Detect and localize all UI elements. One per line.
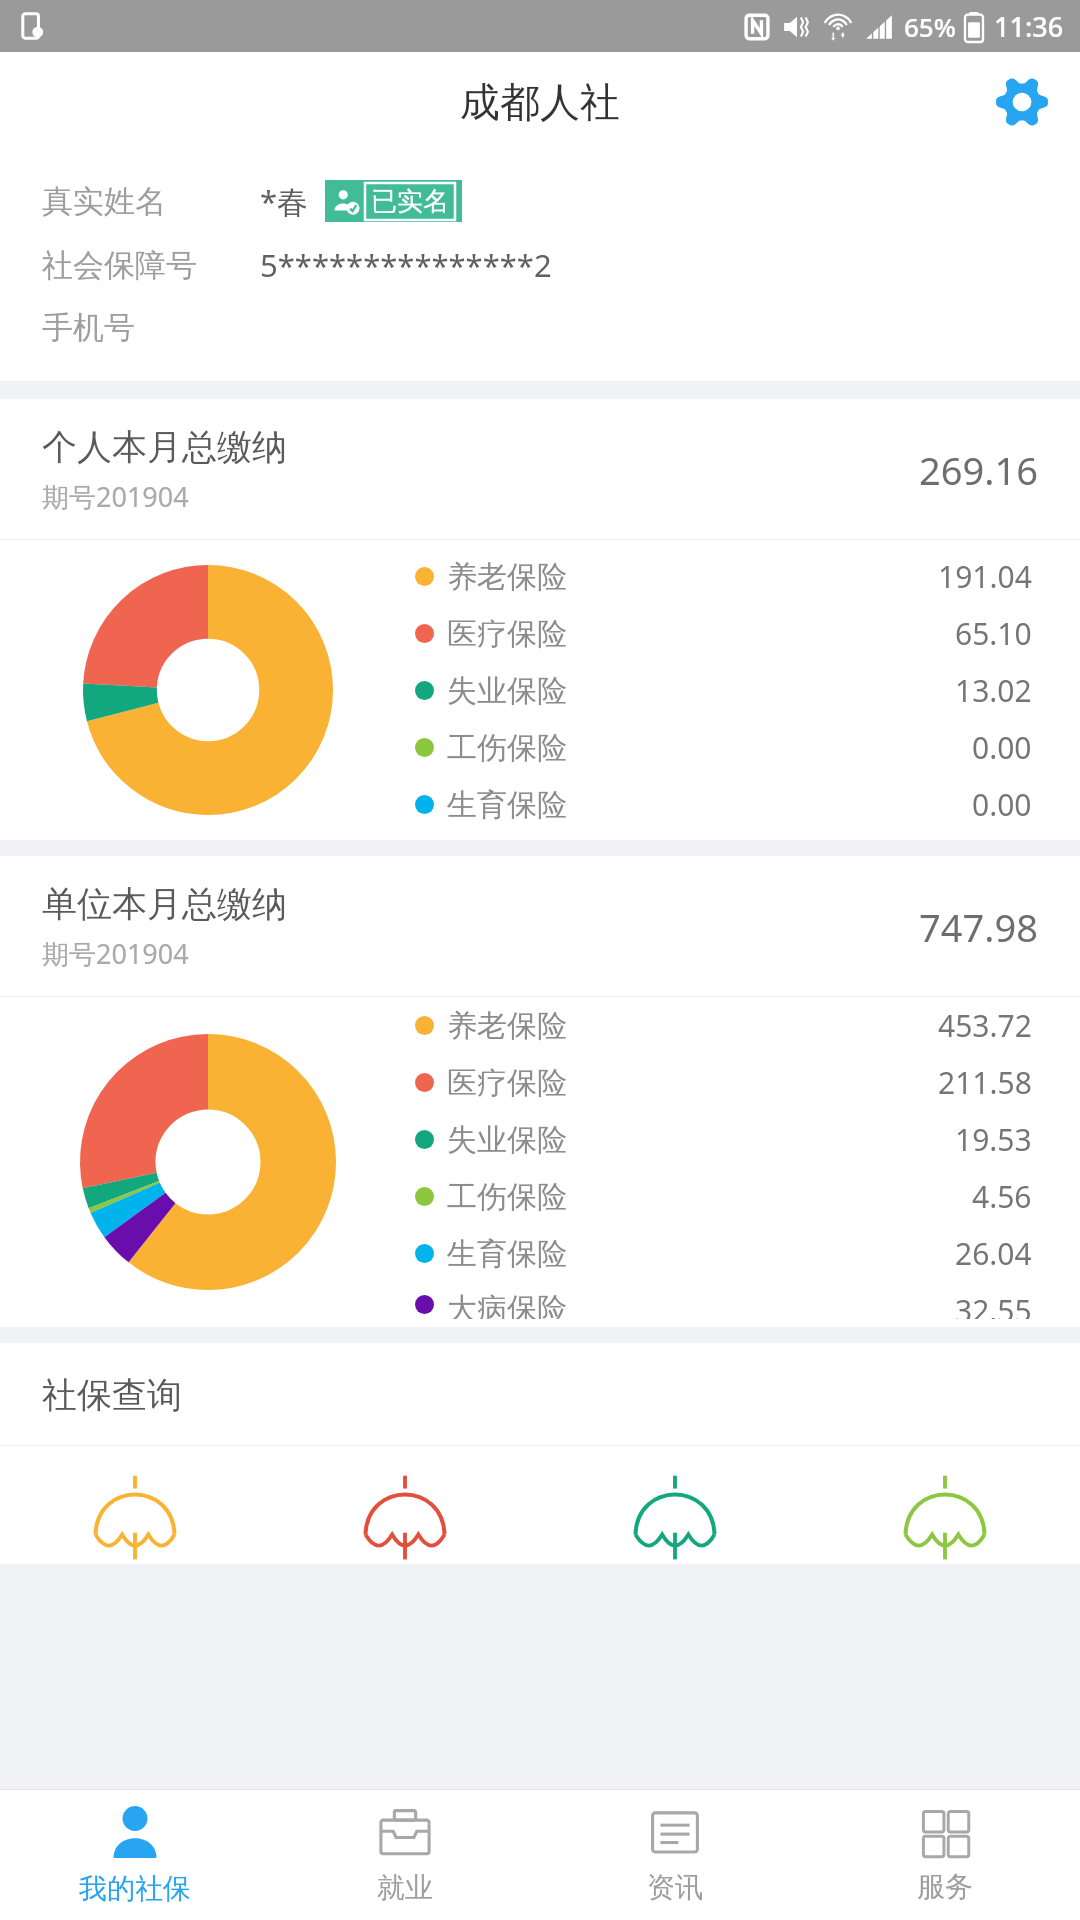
staticText: 大病保险 — [447, 1290, 567, 1319]
staticText: 手机号 — [42, 308, 260, 347]
staticText: 已实名 — [371, 185, 449, 218]
button[interactable]: 服务 — [810, 1790, 1080, 1920]
button[interactable]: 已实名 — [332, 180, 455, 222]
staticText: 就业 — [377, 1870, 433, 1905]
staticText: 5***************2 — [260, 244, 552, 286]
staticText: 社保查询 — [42, 1373, 182, 1417]
staticText: 养老保险 — [447, 558, 567, 596]
button[interactable]: 就业 — [270, 1790, 540, 1920]
button[interactable]: 资讯 — [540, 1790, 810, 1920]
staticText: 生育保险 — [447, 786, 567, 824]
staticText: 13.02 — [955, 670, 1032, 711]
staticText: 747.98 — [919, 901, 1038, 953]
button[interactable]: 社保查询 3 — [810, 1472, 1080, 1564]
button[interactable]: 社保查询 0 — [0, 1472, 270, 1564]
staticText: 我的社保 — [79, 1871, 191, 1906]
staticText: 个人本月总缴纳 — [42, 425, 287, 469]
staticText: 453.72 — [938, 1005, 1032, 1046]
button[interactable]: 我的社保 — [0, 1790, 270, 1920]
staticText: 服务 — [917, 1869, 973, 1904]
staticText: 0.00 — [972, 784, 1032, 825]
staticText: 期号201904 — [42, 478, 189, 515]
staticText: 生育保险 — [447, 1235, 567, 1273]
staticText: 4.56 — [972, 1176, 1032, 1217]
staticText: 11:36 — [994, 8, 1064, 45]
staticText: 成都人社 — [460, 77, 620, 127]
staticText: 工伤保险 — [447, 1178, 567, 1216]
button[interactable]: 社保查询 1 — [270, 1472, 540, 1564]
staticText: 65.10 — [955, 613, 1032, 654]
staticText: 26.04 — [955, 1233, 1032, 1274]
staticText: 0.00 — [972, 727, 1032, 768]
staticText: 医疗保险 — [447, 1064, 567, 1102]
staticText: 工伤保险 — [447, 729, 567, 767]
staticText: 养老保险 — [447, 1007, 567, 1045]
staticText: 失业保险 — [447, 1121, 567, 1159]
staticText: 191.04 — [938, 556, 1032, 597]
button[interactable]: Settings — [988, 68, 1056, 136]
staticText: *春 — [260, 180, 309, 222]
staticText: 269.16 — [919, 444, 1038, 496]
staticText: 资讯 — [647, 1870, 703, 1905]
staticText: 单位本月总缴纳 — [42, 882, 287, 926]
staticText: 19.53 — [955, 1119, 1032, 1160]
staticText: 211.58 — [938, 1062, 1032, 1103]
staticText: 65% — [904, 9, 956, 44]
staticText: 失业保险 — [447, 672, 567, 710]
staticText: 医疗保险 — [447, 615, 567, 653]
staticText: 社会保障号 — [42, 246, 260, 285]
button[interactable]: 社保查询 2 — [540, 1472, 810, 1564]
staticText: 32.55 — [955, 1290, 1032, 1319]
staticText: 期号201904 — [42, 935, 189, 972]
staticText: 真实姓名 — [42, 182, 260, 221]
